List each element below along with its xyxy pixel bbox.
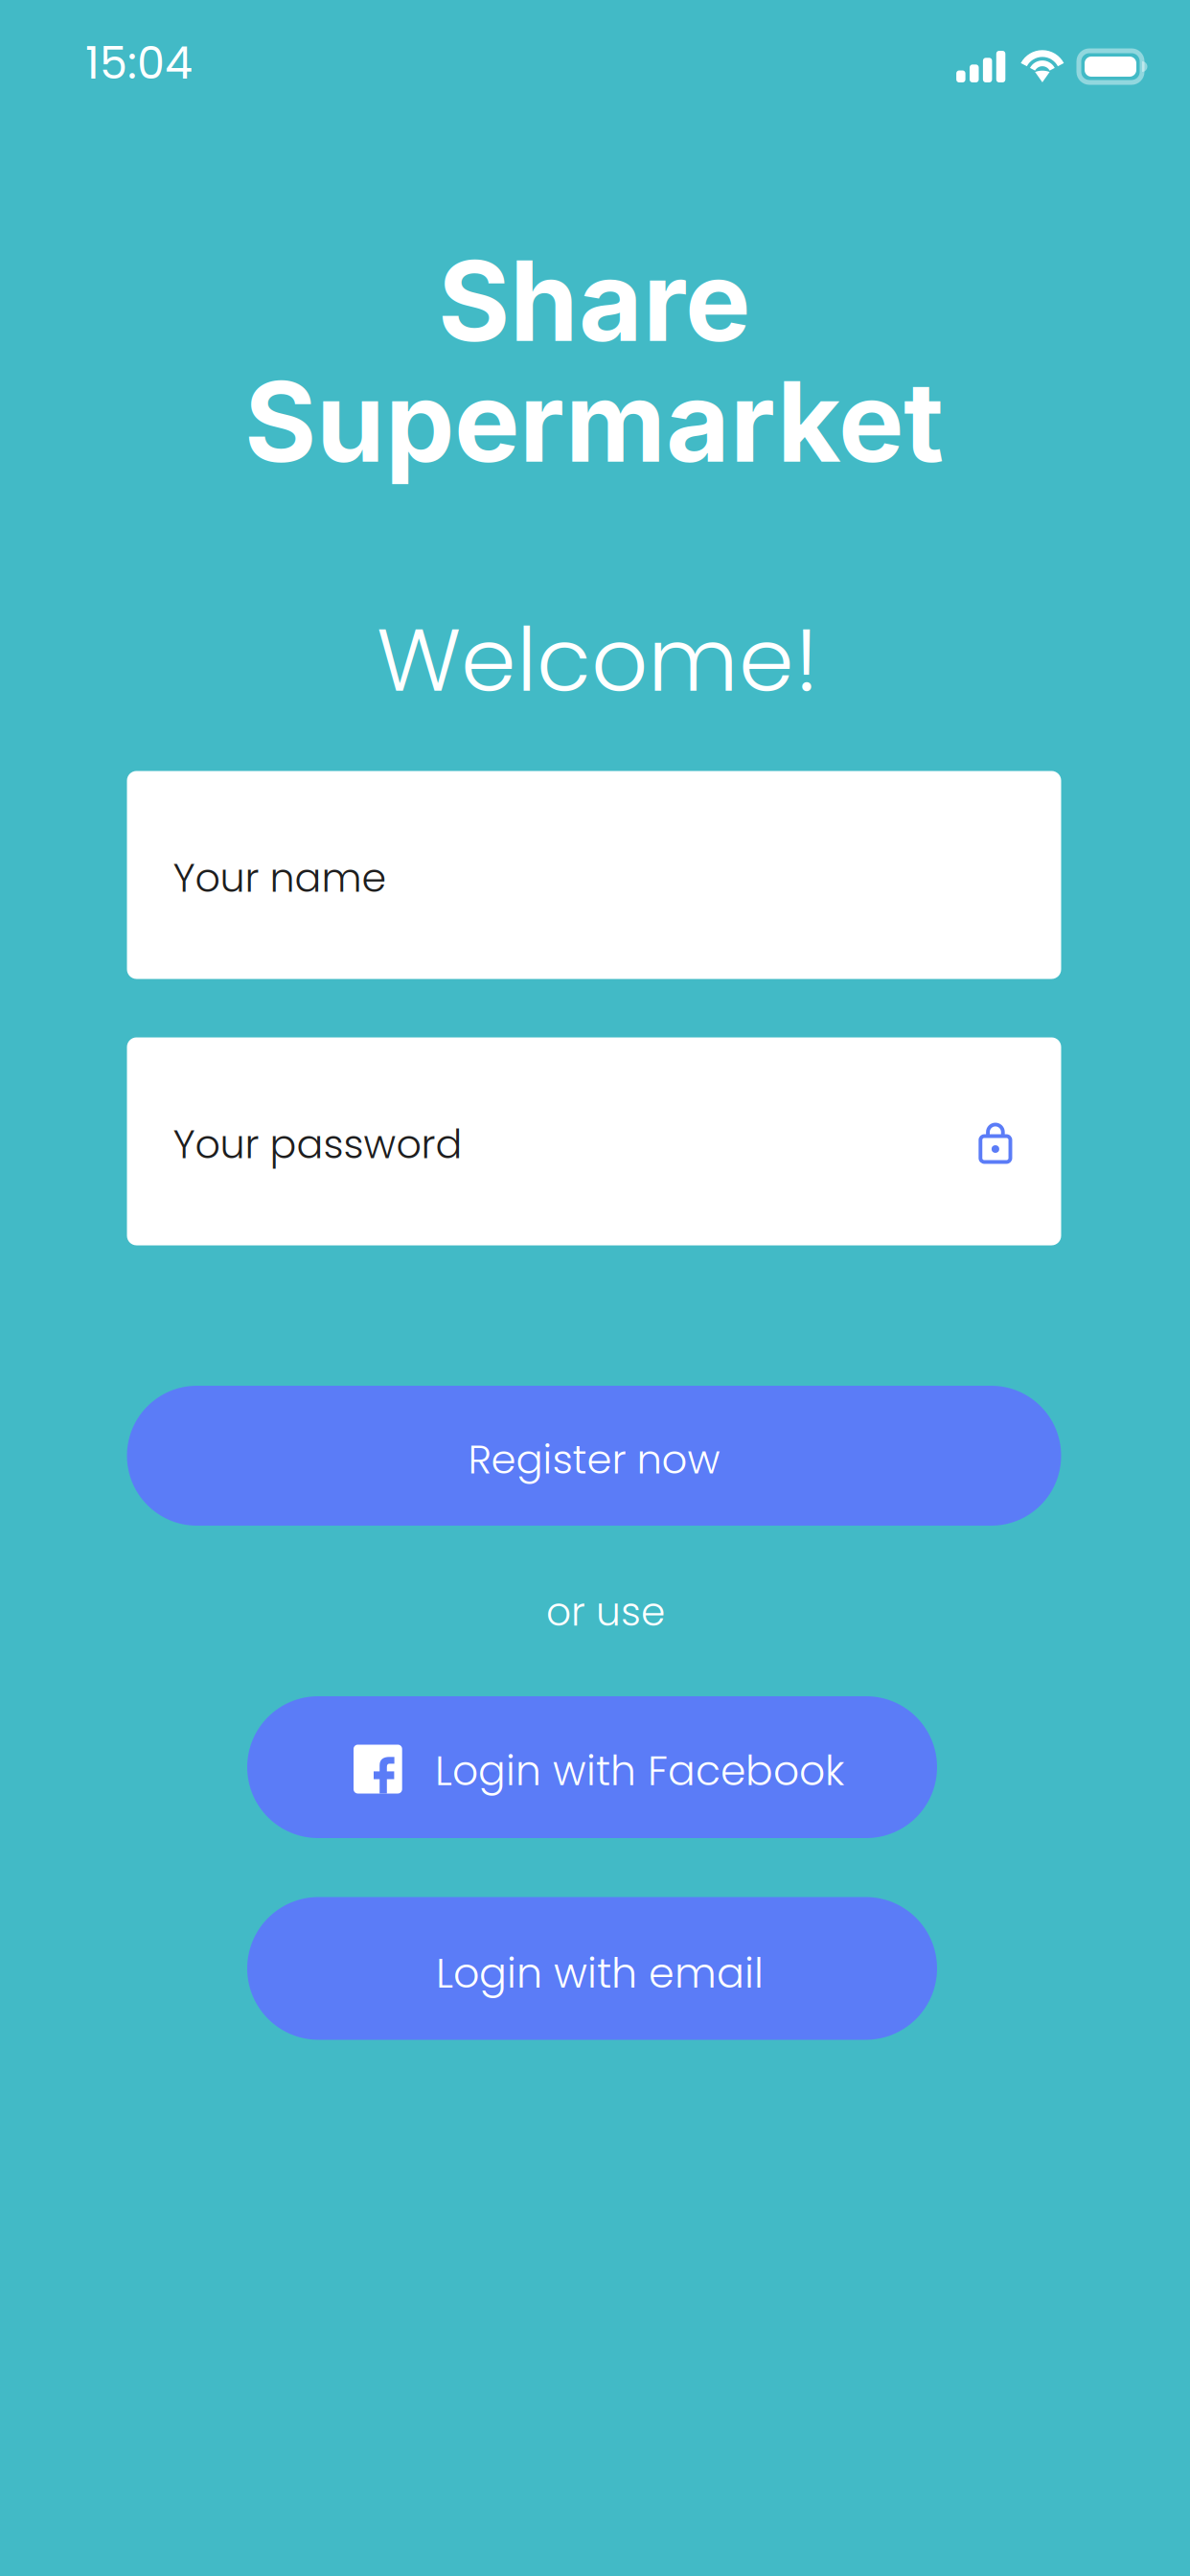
staticText: Your name [173, 850, 387, 906]
button[interactable]: Your name [127, 771, 1061, 979]
staticText: or use [546, 1585, 665, 1639]
button[interactable]: Register now [127, 1386, 1061, 1526]
staticText: Register now [468, 1432, 720, 1488]
staticText: Login with Facebook [435, 1743, 844, 1799]
staticText: 15:04 [85, 32, 193, 94]
staticText: Supermarket [244, 355, 944, 488]
staticText: Welcome! [377, 598, 819, 722]
staticText: Your password [173, 1117, 462, 1172]
button[interactable]: Login with Facebook [247, 1696, 937, 1838]
staticText: Share [438, 234, 750, 368]
button[interactable]: Your password [127, 1037, 1061, 1245]
staticText: Login with email [436, 1944, 764, 2002]
button[interactable]: Login with email [247, 1897, 937, 2040]
